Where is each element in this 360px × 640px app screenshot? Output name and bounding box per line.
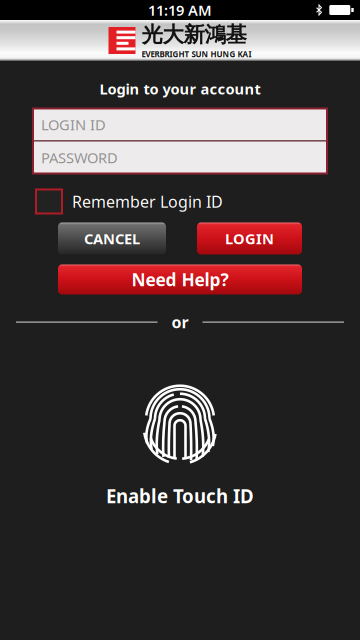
staticText: EVERBRIGHT SUN HUNG KAI [141, 49, 251, 59]
button[interactable]: Need Help? [58, 264, 302, 294]
staticText: LOGIN [225, 229, 274, 248]
staticText: CANCEL [84, 229, 140, 248]
button[interactable]: CANCEL [58, 222, 166, 254]
staticText: PASSWORD [41, 148, 118, 167]
staticText: Enable Touch ID [106, 484, 254, 508]
staticText: Need Help? [131, 268, 228, 291]
button[interactable]: Remember Login ID [36, 189, 62, 213]
staticText: Remember Login ID [72, 191, 223, 212]
button[interactable]: LOGIN [197, 222, 302, 254]
button[interactable]: Enable Touch ID [106, 388, 254, 508]
staticText: 11:19 AM [148, 0, 212, 20]
staticText: or [171, 311, 188, 333]
staticText: Login to your account [99, 79, 260, 98]
staticText: 光大新鴻基 [141, 22, 246, 48]
staticText: LOGIN ID [41, 115, 106, 134]
